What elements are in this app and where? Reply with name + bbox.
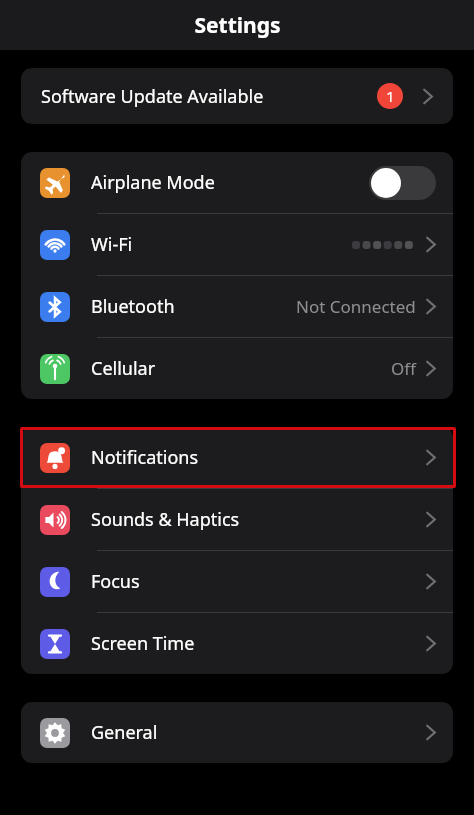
button[interactable]: Cellular	[21, 338, 453, 399]
button[interactable]: Sounds & Haptics	[21, 489, 453, 550]
staticText: Bluetooth	[91, 294, 175, 319]
button[interactable]: Notifications	[21, 427, 453, 488]
staticText: Settings	[194, 11, 281, 40]
button[interactable]: Software Update Available	[21, 68, 453, 124]
staticText: Sounds & Haptics	[91, 507, 240, 532]
staticText: Notifications	[91, 445, 199, 470]
button[interactable]: Airplane Mode	[21, 152, 453, 213]
button[interactable]: Focus	[21, 551, 453, 612]
staticText: Wi-Fi	[91, 232, 133, 257]
button[interactable]: Screen Time	[21, 613, 453, 674]
staticText: Software Update Available	[41, 84, 264, 109]
staticText: General	[91, 720, 158, 745]
button[interactable]: Wi-Fi	[21, 214, 453, 275]
button[interactable]: Bluetooth	[21, 276, 453, 337]
staticText: Focus	[91, 569, 140, 594]
button[interactable]: Airplane Mode toggle	[369, 166, 436, 200]
staticText: Not Connected	[296, 295, 416, 318]
button[interactable]: General	[21, 702, 453, 763]
staticText: Screen Time	[91, 631, 195, 656]
staticText: Airplane Mode	[91, 170, 215, 195]
staticText: Cellular	[91, 356, 156, 381]
staticText: 1	[386, 86, 395, 106]
staticText: Off	[391, 357, 416, 380]
